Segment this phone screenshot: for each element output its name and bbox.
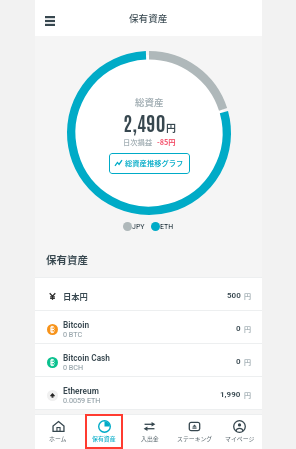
- staticText: 0 BCH: [63, 363, 84, 371]
- staticText: 0: [236, 357, 241, 366]
- staticText: -85円: [157, 137, 176, 148]
- staticText: 日次損益: [123, 137, 153, 148]
- staticText: 保有資産: [92, 434, 116, 443]
- staticText: 円: [244, 357, 251, 367]
- staticText: ホーム: [49, 434, 67, 443]
- staticText: 0: [236, 324, 241, 333]
- staticText: ETH: [160, 223, 174, 231]
- staticText: 2,490: [123, 109, 166, 135]
- button[interactable]: 保有資産: [81, 414, 127, 449]
- staticText: JPY: [132, 223, 145, 231]
- staticText: 円: [244, 324, 251, 334]
- staticText: 1,990: [220, 390, 241, 399]
- button[interactable]: ホーム: [35, 414, 81, 449]
- staticText: 入出金: [141, 434, 159, 443]
- staticText: Bitcoin: [63, 320, 90, 330]
- staticText: Ethereum: [63, 386, 99, 396]
- staticText: 0 BTC: [63, 330, 83, 338]
- button[interactable]: 入出金: [127, 414, 172, 449]
- button[interactable]: Menu: [37, 8, 63, 34]
- button[interactable]: Bitcoin Cash: [35, 344, 262, 376]
- staticText: ステーキング: [177, 434, 213, 443]
- staticText: 円: [166, 120, 176, 134]
- staticText: 保有資産: [129, 11, 168, 25]
- button[interactable]: マイページ: [217, 414, 262, 449]
- button[interactable]: 日本円: [35, 278, 262, 310]
- staticText: 総資産推移グラフ: [125, 158, 184, 169]
- button[interactable]: Bitcoin: [35, 311, 262, 343]
- staticText: 保有資産: [46, 252, 88, 267]
- button[interactable]: Ethereum: [35, 377, 262, 409]
- staticText: 500: [227, 291, 241, 300]
- button[interactable]: ステーキング: [172, 414, 217, 449]
- staticText: Bitcoin Cash: [63, 353, 110, 363]
- staticText: マイページ: [225, 434, 255, 443]
- button[interactable]: 総資産推移グラフ: [109, 153, 190, 174]
- staticText: 日本円: [63, 290, 88, 302]
- staticText: 0.0059 ETH: [63, 396, 101, 404]
- staticText: 総資産: [135, 95, 164, 109]
- staticText: 円: [244, 390, 251, 400]
- staticText: 円: [244, 291, 251, 301]
